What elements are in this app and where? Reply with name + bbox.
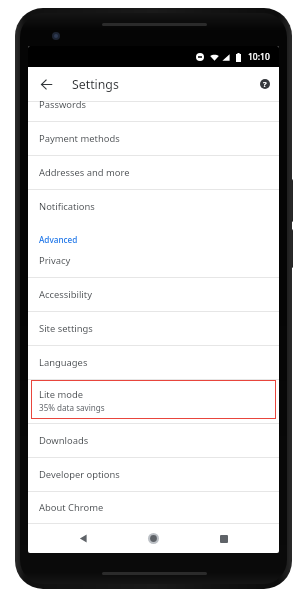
button[interactable]: Site settings bbox=[28, 312, 279, 346]
button[interactable]: Addresses and more bbox=[28, 156, 279, 190]
button[interactable]: Notifications bbox=[28, 190, 279, 223]
staticText: Downloads bbox=[39, 434, 89, 447]
button[interactable]: Help and feedback bbox=[247, 68, 279, 100]
button[interactable]: Back bbox=[69, 524, 98, 553]
staticText: 35% data savings bbox=[39, 402, 105, 413]
button[interactable]: Recent apps bbox=[209, 524, 238, 553]
staticText: Payment methods bbox=[39, 132, 120, 145]
staticText: Addresses and more bbox=[39, 166, 130, 179]
button[interactable]: Passwords bbox=[28, 102, 279, 122]
staticText: About Chrome bbox=[39, 501, 104, 514]
button[interactable]: Home bbox=[139, 524, 168, 553]
staticText: Notifications bbox=[39, 200, 95, 213]
button[interactable]: Accessibility bbox=[28, 278, 279, 312]
staticText: Accessibility bbox=[39, 288, 92, 301]
button[interactable]: Payment methods bbox=[28, 122, 279, 156]
button[interactable]: About Chrome bbox=[28, 492, 279, 523]
button[interactable]: Developer options bbox=[28, 458, 279, 492]
button[interactable]: Languages bbox=[28, 346, 279, 380]
staticText: ? bbox=[263, 79, 267, 89]
staticText: Settings bbox=[72, 76, 119, 93]
staticText: Advanced bbox=[39, 234, 78, 245]
button[interactable]: Privacy bbox=[28, 253, 279, 278]
staticText: Privacy bbox=[39, 254, 71, 267]
button[interactable]: Downloads bbox=[28, 424, 279, 458]
staticText: Site settings bbox=[39, 322, 93, 335]
staticText: Languages bbox=[39, 356, 88, 369]
staticText: 10:10 bbox=[248, 51, 270, 63]
staticText: Passwords bbox=[39, 98, 86, 111]
staticText: Developer options bbox=[39, 468, 120, 481]
button[interactable]: Lite mode bbox=[28, 380, 279, 424]
button[interactable]: Back bbox=[31, 69, 61, 99]
staticText: Lite mode bbox=[39, 388, 84, 401]
